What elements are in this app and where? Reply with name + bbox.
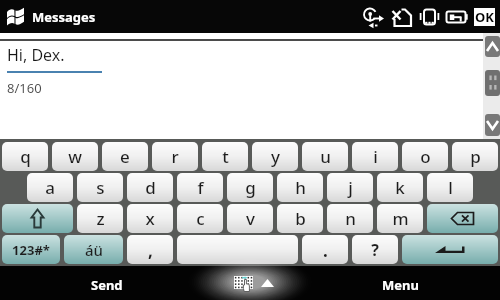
other: Battery charging (445, 8, 470, 26)
staticText: t (222, 145, 229, 168)
staticText: b (295, 207, 306, 230)
other: Data connection (363, 7, 386, 29)
staticText: u (320, 145, 331, 168)
staticText: p (470, 145, 481, 168)
button[interactable]: v (227, 204, 273, 233)
button[interactable]: k (377, 173, 423, 202)
button[interactable]: Show keyboard (213, 266, 285, 300)
button[interactable]: l (427, 173, 473, 202)
button[interactable]: u (302, 142, 348, 171)
button[interactable]: . (302, 235, 348, 264)
button[interactable] (177, 235, 298, 264)
button[interactable]: i (352, 142, 398, 171)
staticText: Send (91, 276, 123, 294)
button[interactable]: t (202, 142, 248, 171)
button[interactable]: w (52, 142, 98, 171)
staticText: m (392, 207, 409, 230)
staticText: h (295, 176, 306, 199)
button[interactable]: 123#* (2, 235, 60, 264)
button[interactable]: r (152, 142, 198, 171)
button[interactable]: j (327, 173, 373, 202)
staticText: n (345, 207, 356, 230)
button[interactable]: Scroll up (485, 36, 500, 57)
staticText: áü (85, 240, 103, 260)
button[interactable] (427, 204, 498, 233)
button[interactable]: f (177, 173, 223, 202)
staticText: w (68, 145, 82, 168)
staticText: y (271, 145, 280, 168)
staticText: ? (371, 239, 379, 261)
button[interactable]: s (77, 173, 123, 202)
button[interactable]: h (277, 173, 323, 202)
button[interactable]: Scroll thumb (485, 70, 500, 96)
other: No SIM card (391, 7, 415, 28)
button[interactable]: Menu (285, 266, 500, 300)
button[interactable]: g (227, 173, 273, 202)
staticText: z (96, 207, 105, 230)
staticText: o (420, 145, 431, 168)
staticText: 8/160 (7, 79, 42, 97)
staticText: s (96, 176, 105, 199)
button[interactable]: o (402, 142, 448, 171)
button[interactable]: n (327, 204, 373, 233)
other: Vibrate mode (419, 7, 440, 27)
button[interactable]: x (127, 204, 173, 233)
button[interactable]: m (377, 204, 423, 233)
button[interactable]: OK (474, 8, 495, 26)
staticText: v (246, 207, 255, 230)
button[interactable]: d (127, 173, 173, 202)
button[interactable]: ? (352, 235, 398, 264)
button[interactable]: Send (0, 266, 213, 300)
staticText: e (120, 145, 130, 168)
staticText: d (145, 176, 156, 199)
staticText: , (148, 239, 153, 262)
button[interactable]: y (252, 142, 298, 171)
staticText: Menu (382, 276, 419, 294)
button[interactable]: z (77, 204, 123, 233)
button[interactable]: áü (64, 235, 123, 264)
staticText: . (323, 239, 328, 262)
staticText: 123#* (12, 241, 50, 259)
button[interactable]: q (2, 142, 48, 171)
button[interactable]: p (452, 142, 498, 171)
staticText: f (197, 176, 204, 199)
button[interactable]: Scroll down (485, 114, 500, 136)
staticText: k (395, 176, 405, 199)
staticText: OK (475, 8, 494, 26)
staticText: g (245, 176, 256, 199)
staticText: Hi, Dex. (7, 44, 65, 66)
staticText: j (348, 176, 353, 199)
staticText: Messages (32, 8, 96, 26)
staticText: a (45, 176, 55, 199)
button[interactable]: b (277, 204, 323, 233)
button[interactable]: a (27, 173, 73, 202)
button[interactable]: e (102, 142, 148, 171)
button[interactable] (402, 235, 498, 264)
button[interactable] (2, 204, 73, 233)
button[interactable]: , (127, 235, 173, 264)
staticText: l (448, 176, 453, 199)
button[interactable]: c (177, 204, 223, 233)
staticText: x (145, 207, 155, 230)
staticText: i (373, 145, 378, 168)
staticText: q (20, 145, 31, 168)
staticText: r (171, 145, 179, 168)
staticText: c (196, 207, 205, 230)
